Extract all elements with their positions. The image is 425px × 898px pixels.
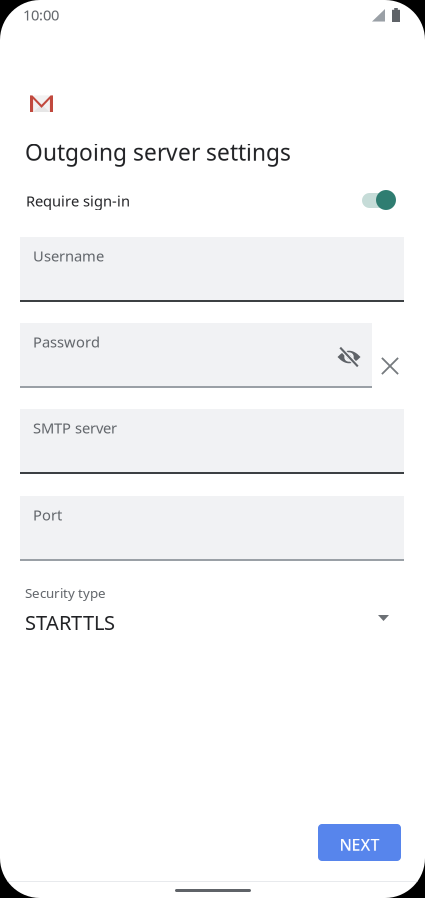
button[interactable]: Security type (0, 0, 370, 48)
staticText: Password (33, 332, 100, 351)
staticText: 10:00 (23, 5, 59, 24)
staticText: Outgoing server settings (25, 137, 291, 167)
button[interactable]: Hide password (20, 323, 64, 367)
staticText: Username (33, 246, 104, 265)
button[interactable]: Require sign-in (0, 0, 370, 32)
staticText: STARTTLS (25, 609, 115, 636)
staticText: Port (33, 505, 62, 524)
staticText: Require sign-in (26, 191, 130, 210)
button[interactable]: NEXT (318, 824, 401, 861)
staticText: SMTP server (33, 418, 117, 437)
button[interactable]: Clear password (373, 349, 407, 383)
staticText: Security type (25, 584, 106, 602)
staticText: NEXT (339, 834, 379, 855)
